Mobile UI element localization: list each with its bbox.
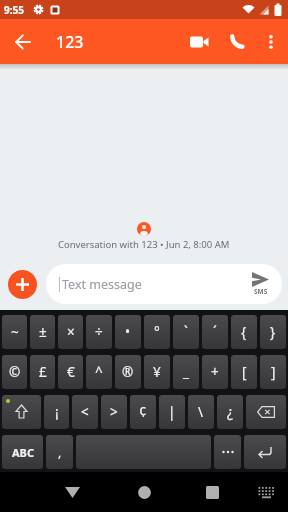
staticText: £ bbox=[39, 363, 47, 381]
staticText: ¿ bbox=[227, 403, 233, 421]
button[interactable]: ] bbox=[260, 355, 286, 389]
button[interactable] bbox=[218, 19, 256, 64]
button[interactable]: ¢ bbox=[130, 395, 156, 429]
button[interactable]: € bbox=[58, 355, 83, 389]
staticText: [ bbox=[242, 363, 247, 381]
staticText: ÷ bbox=[95, 323, 103, 341]
staticText: ° bbox=[154, 323, 160, 341]
button[interactable]: [ bbox=[231, 355, 257, 389]
staticText: • bbox=[125, 323, 131, 341]
button[interactable]: £ bbox=[30, 355, 55, 389]
button[interactable] bbox=[192, 472, 232, 512]
staticText: , bbox=[58, 444, 62, 461]
button[interactable]: ÷ bbox=[86, 315, 112, 349]
button[interactable]: | bbox=[159, 395, 185, 429]
staticText: ± bbox=[39, 323, 47, 341]
button[interactable]: ® bbox=[115, 355, 141, 389]
button[interactable] bbox=[214, 435, 241, 469]
staticText: \ bbox=[198, 403, 204, 421]
staticText: > bbox=[110, 403, 118, 421]
button[interactable] bbox=[256, 19, 286, 64]
staticText: ^ bbox=[95, 363, 103, 381]
button[interactable]: SMS bbox=[252, 272, 269, 296]
staticText: ] bbox=[271, 363, 276, 381]
button[interactable] bbox=[124, 472, 164, 512]
staticText: ` bbox=[184, 323, 188, 341]
button[interactable] bbox=[244, 435, 286, 469]
button[interactable]: } bbox=[260, 315, 286, 349]
button[interactable] bbox=[76, 435, 211, 469]
staticText: + bbox=[211, 363, 219, 381]
staticText: ´ bbox=[213, 323, 217, 341]
staticText: } bbox=[270, 323, 276, 341]
staticText: € bbox=[67, 363, 75, 381]
staticText: © bbox=[9, 363, 21, 381]
staticText: × bbox=[67, 323, 75, 341]
button[interactable]: { bbox=[231, 315, 257, 349]
button[interactable]: ^ bbox=[86, 355, 112, 389]
button[interactable]: ` bbox=[173, 315, 199, 349]
button[interactable]: \ bbox=[188, 395, 214, 429]
button[interactable]: Text message bbox=[46, 264, 282, 304]
staticText: 9:55 bbox=[4, 3, 24, 17]
button[interactable]: ´ bbox=[202, 315, 228, 349]
button[interactable] bbox=[2, 395, 41, 429]
button[interactable]: ~ bbox=[2, 315, 27, 349]
staticText: ABC bbox=[12, 445, 34, 460]
button[interactable]: > bbox=[101, 395, 127, 429]
staticText: ¥ bbox=[153, 363, 161, 381]
staticText: ~ bbox=[11, 323, 19, 341]
button[interactable]: ± bbox=[30, 315, 55, 349]
button[interactable]: ¿ bbox=[217, 395, 243, 429]
button[interactable] bbox=[248, 472, 284, 512]
staticText: ¡ bbox=[55, 403, 59, 421]
button[interactable]: ABC bbox=[2, 435, 43, 469]
staticText: ® bbox=[122, 363, 134, 381]
button[interactable]: × bbox=[58, 315, 83, 349]
button[interactable] bbox=[0, 19, 45, 64]
button[interactable]: + bbox=[202, 355, 228, 389]
staticText: Text message bbox=[62, 276, 142, 293]
button[interactable]: • bbox=[115, 315, 141, 349]
button[interactable] bbox=[8, 270, 37, 299]
staticText: < bbox=[81, 403, 89, 421]
staticText: _ bbox=[183, 363, 189, 381]
staticText: 123 bbox=[56, 31, 84, 53]
button[interactable]: ¡ bbox=[44, 395, 69, 429]
button[interactable] bbox=[180, 19, 218, 64]
button[interactable]: ¥ bbox=[144, 355, 170, 389]
button[interactable]: , bbox=[46, 435, 73, 469]
button[interactable]: ° bbox=[144, 315, 170, 349]
button[interactable]: < bbox=[72, 395, 98, 429]
button[interactable]: _ bbox=[173, 355, 199, 389]
button[interactable] bbox=[246, 395, 286, 429]
staticText: ¢ bbox=[139, 403, 147, 421]
button[interactable]: © bbox=[2, 355, 27, 389]
staticText: SMS bbox=[254, 287, 268, 296]
staticText: Conversation with 123 • Jun 2, 8:00 AM bbox=[58, 238, 230, 251]
button[interactable] bbox=[52, 472, 92, 512]
staticText: | bbox=[168, 403, 176, 421]
staticText: { bbox=[241, 323, 247, 341]
